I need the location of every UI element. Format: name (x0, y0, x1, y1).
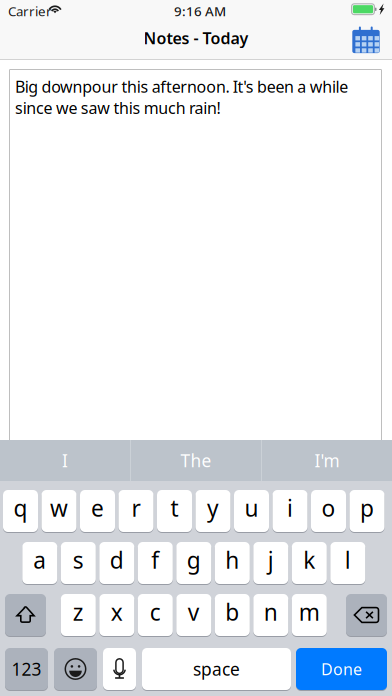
staticText: a (33, 545, 46, 575)
staticText: i (287, 493, 293, 523)
staticText: v (188, 597, 200, 627)
button[interactable]: a (22, 542, 57, 584)
staticText: I (62, 449, 68, 472)
staticText: j (268, 545, 274, 575)
staticText: f (151, 545, 159, 575)
button[interactable]: i (272, 490, 307, 532)
button[interactable]: space (142, 648, 291, 690)
button[interactable]: k (292, 542, 327, 584)
staticText: r (131, 493, 140, 523)
button[interactable]: The (131, 440, 261, 481)
staticText: c (150, 597, 161, 627)
staticText: Carrier (8, 2, 52, 20)
button[interactable]: e (80, 490, 115, 532)
staticText: k (303, 545, 315, 575)
staticText: o (321, 493, 335, 523)
staticText: t (170, 493, 178, 523)
button[interactable]: l (330, 542, 365, 584)
button[interactable]: w (41, 490, 76, 532)
button[interactable]: o (311, 490, 346, 532)
staticText: z (73, 597, 84, 627)
button[interactable]: t (157, 490, 192, 532)
staticText: x (111, 597, 123, 627)
button[interactable]: Calendar (348, 22, 384, 58)
button[interactable]: m (292, 594, 327, 636)
staticText: g (187, 545, 201, 575)
button[interactable]: r (118, 490, 153, 532)
button[interactable]: p (349, 490, 384, 532)
button[interactable]: q (3, 490, 38, 532)
button[interactable]: 123 (5, 648, 48, 690)
button[interactable]: Done (296, 648, 387, 690)
button[interactable]: s (61, 542, 96, 584)
button[interactable]: Emoji (54, 648, 97, 690)
staticText: u (244, 493, 258, 523)
button[interactable]: y (195, 490, 230, 532)
staticText: Big downpour this afternoon. It's been a… (15, 76, 348, 118)
staticText: w (50, 493, 68, 523)
button[interactable]: Delete (346, 594, 387, 636)
button[interactable]: Shift (5, 594, 46, 636)
staticText: p (360, 493, 374, 523)
button[interactable]: Dictate (103, 648, 136, 690)
button[interactable]: u (234, 490, 269, 532)
staticText: y (207, 493, 219, 523)
button[interactable]: g (176, 542, 211, 584)
staticText: 123 (11, 657, 41, 680)
staticText: d (110, 545, 124, 575)
button[interactable]: z (61, 594, 96, 636)
button[interactable]: I'm (262, 440, 392, 481)
staticText: The (180, 449, 211, 472)
staticText: b (225, 597, 239, 627)
button[interactable]: j (253, 542, 288, 584)
button[interactable]: n (253, 594, 288, 636)
button[interactable]: f (138, 542, 173, 584)
staticText: I'm (314, 449, 339, 472)
button[interactable]: d (99, 542, 134, 584)
staticText: Done (321, 658, 362, 680)
button[interactable]: b (215, 594, 250, 636)
button[interactable]: v (176, 594, 211, 636)
button[interactable]: h (215, 542, 250, 584)
staticText: space (193, 657, 240, 680)
button[interactable]: I (0, 440, 130, 481)
staticText: h (225, 545, 239, 575)
staticText: m (299, 597, 320, 627)
button[interactable]: c (138, 594, 173, 636)
staticText: l (345, 545, 351, 575)
staticText: e (91, 493, 104, 523)
staticText: n (264, 597, 278, 627)
button[interactable]: x (99, 594, 134, 636)
staticText: Notes - Today (143, 27, 248, 49)
staticText: 9:16 AM (174, 2, 226, 20)
staticText: s (73, 545, 84, 575)
staticText: q (13, 493, 27, 523)
